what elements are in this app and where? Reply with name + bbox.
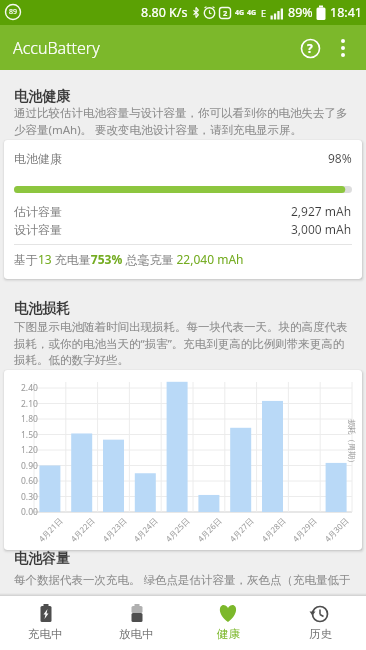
button[interactable]: 电池健康	[4, 140, 362, 279]
staticText: 4月26日	[195, 515, 224, 544]
staticText: 4月21日	[36, 515, 65, 544]
staticText: 损耗（周期）	[347, 419, 357, 467]
staticText: 3,000 mAh	[291, 221, 352, 237]
staticText: 1.50	[21, 429, 38, 441]
staticText: 2,927 mAh	[291, 203, 352, 219]
staticText: 电池损耗	[14, 300, 70, 318]
staticText: 4月23日	[100, 515, 129, 544]
staticText: 4月27日	[227, 515, 256, 544]
staticText: 每个数据代表一次充电。 绿色点是估计容量，灰色点（充电量低于	[14, 572, 351, 588]
staticText: 2.40	[21, 382, 38, 394]
staticText: 电池容量	[14, 550, 70, 568]
staticText: 放电中	[119, 627, 154, 641]
button[interactable]: ?	[292, 30, 328, 66]
staticText: 89%	[288, 4, 313, 21]
staticText: 89	[9, 7, 18, 17]
staticText: 8.80 K/s	[141, 4, 188, 21]
staticText: 1.80	[21, 413, 38, 425]
staticText: 18:41	[330, 4, 362, 21]
staticText: 健康	[217, 627, 240, 641]
staticText: 4月22日	[68, 515, 97, 544]
button[interactable]: 健康	[182, 596, 274, 650]
staticText: 0.90	[21, 460, 38, 472]
staticText: 4G	[235, 8, 245, 18]
staticText: 2	[223, 8, 228, 18]
staticText: 98%	[328, 150, 352, 166]
staticText: 充电中	[28, 627, 63, 641]
staticText: 电池健康	[14, 151, 62, 166]
staticText: 历史	[309, 627, 332, 641]
button[interactable]: 0.00	[4, 370, 362, 550]
staticText: 4月30日	[322, 515, 351, 544]
staticText: 1.20	[21, 444, 38, 456]
staticText: E	[261, 7, 267, 19]
button[interactable]: 历史	[274, 596, 366, 650]
button[interactable]	[328, 33, 358, 63]
button[interactable]: 充电中	[0, 596, 91, 650]
staticText: 设计容量	[14, 222, 62, 237]
staticText: 通过比较估计电池容量与设计容量，你可以看到你的电池失去了多少容量(mAh)。 要…	[14, 106, 352, 138]
staticText: 基于13 充电量753% 总毫克量 22,040 mAh	[14, 251, 244, 267]
staticText: ?	[307, 40, 313, 56]
staticText: 0.60	[21, 475, 38, 487]
staticText: 下图显示电池随着时间出现损耗。每一块代表一天。块的高度代表损耗，或你的电池当天的…	[14, 320, 352, 367]
staticText: 电池健康	[14, 88, 70, 106]
staticText: 估计容量	[14, 204, 62, 219]
staticText: 4月29日	[290, 515, 319, 544]
staticText: 4月24日	[131, 515, 160, 544]
staticText: AccuBattery	[13, 37, 100, 59]
staticText: 2.10	[21, 398, 38, 410]
staticText: 4G	[247, 8, 257, 18]
staticText: 4月28日	[259, 515, 288, 544]
button[interactable]: 放电中	[91, 596, 182, 650]
staticText: 0.30	[21, 491, 38, 503]
staticText: 0.00	[21, 506, 38, 518]
staticText: 4月25日	[163, 515, 192, 544]
